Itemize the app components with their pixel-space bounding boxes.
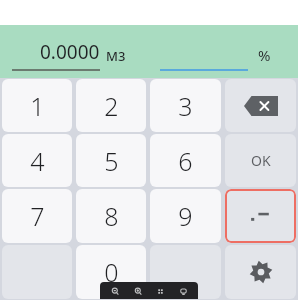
staticText: 6 [178,144,193,178]
button[interactable]: 0.0000 [12,33,100,71]
button[interactable]: Grid [153,284,167,298]
staticText: 9 [178,199,193,233]
staticText: 3 [178,89,193,123]
button[interactable]: 6 [150,134,221,187]
staticText: % [258,45,271,65]
button[interactable]: Dot or minus [225,189,296,243]
button[interactable]: 4 [2,134,72,187]
button[interactable]: 7 [2,189,72,243]
staticText: 4 [30,144,45,178]
button[interactable]: OK [225,134,296,187]
button[interactable]: 0 [76,245,146,299]
button[interactable]: Zoom out [108,284,122,298]
button[interactable]: 1 [2,79,72,132]
staticText: 2 [104,89,119,123]
button[interactable]: Settings [225,245,296,299]
button[interactable]: Backspace [225,79,296,132]
staticText: 0 [104,255,119,289]
button[interactable]: 3 [150,79,221,132]
button[interactable]: 9 [150,189,221,243]
button[interactable]: Zoom in [131,284,145,298]
staticText: 8 [104,199,119,233]
button[interactable]: 5 [76,134,146,187]
staticText: M3 [106,47,126,65]
staticText: 1 [30,89,45,123]
button[interactable]: Blank [150,245,221,299]
button[interactable]: 2 [76,79,146,132]
staticText: 5 [104,144,119,178]
button[interactable] [160,33,248,71]
staticText: OK [251,151,271,170]
staticText: 0.0000 [40,39,100,65]
button[interactable]: 8 [76,189,146,243]
button[interactable]: Cast [176,284,190,298]
staticText: 7 [30,199,45,233]
